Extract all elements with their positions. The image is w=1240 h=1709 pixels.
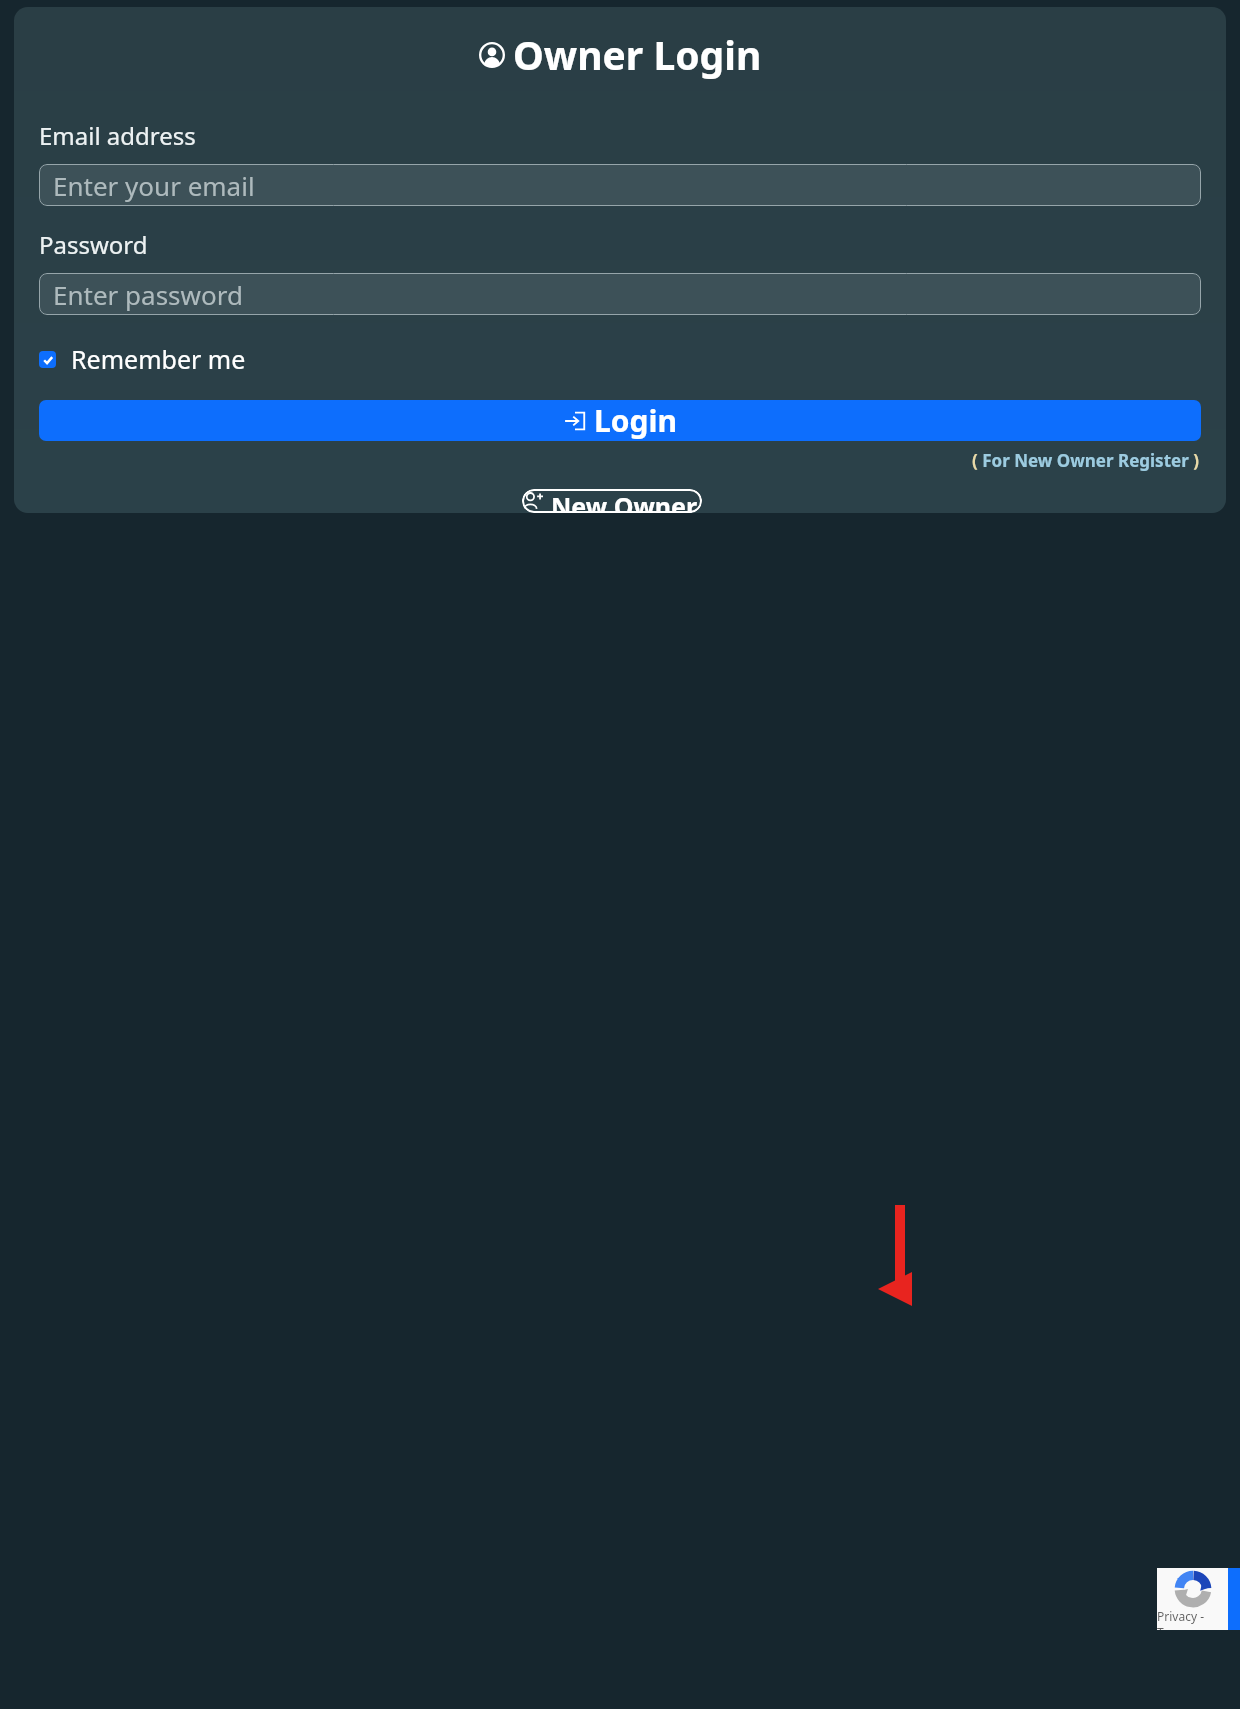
button[interactable]: New Owner Register [522, 489, 702, 513]
staticText: Login [594, 400, 677, 441]
button[interactable]: Login [39, 400, 1201, 441]
staticText: Enter your email [53, 168, 255, 203]
button[interactable]: Enter password [39, 273, 1201, 315]
button[interactable]: reCAPTCHA Privacy Terms [1157, 1568, 1228, 1630]
staticText: Privacy - Terms [1157, 1608, 1228, 1630]
staticText: Password [39, 228, 148, 261]
staticText: Remember me [71, 342, 246, 376]
staticText: Email address [39, 119, 196, 152]
staticText: ( For New Owner Register ) [972, 449, 1199, 472]
button[interactable]: Enter your email [39, 164, 1201, 206]
button[interactable]: Remember me [39, 340, 246, 378]
staticText: New Owner Register [551, 489, 702, 513]
staticText: Enter password [53, 277, 243, 312]
staticText: Owner Login [513, 28, 762, 81]
